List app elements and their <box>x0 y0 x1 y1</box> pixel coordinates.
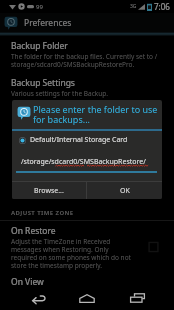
staticText: Adjust the TimeZone in Received messages… <box>11 237 132 270</box>
staticText: Backup Settings <box>11 77 75 89</box>
staticText: On Restore <box>11 225 56 237</box>
button[interactable]: Home <box>75 286 99 310</box>
button[interactable]: Recent apps <box>125 286 149 310</box>
staticText: OK <box>120 186 130 196</box>
staticText: Various settings for the Backup. <box>11 89 108 98</box>
staticText: Browse... <box>34 186 64 196</box>
button[interactable]: Browse... <box>12 182 86 199</box>
button[interactable]: OK <box>87 182 162 199</box>
staticText: 3G <box>130 3 137 10</box>
button[interactable]: Backup Folder <box>0 36 174 72</box>
button[interactable]: On Restore <box>0 221 174 272</box>
staticText: The folder for the backup files. Current… <box>11 52 166 69</box>
staticText: ADJUST TIME ZONE <box>11 209 74 217</box>
staticText: Backup Folder <box>11 40 68 52</box>
staticText: Preferences <box>24 17 72 29</box>
button[interactable]: Default/Internal Storage Card <box>12 133 162 147</box>
button[interactable]: Backup Settings <box>0 72 174 101</box>
staticText: Please enter the folder to use for backu… <box>33 103 161 126</box>
staticText: On View <box>11 276 44 288</box>
staticText: 99 <box>36 3 43 11</box>
staticText: 7:06 <box>154 1 170 12</box>
staticText: /storage/sdcard0/SMSBackupRestore/ <box>21 157 146 167</box>
button[interactable]: Back <box>26 286 50 310</box>
staticText: Default/Internal Storage Card <box>30 135 128 145</box>
